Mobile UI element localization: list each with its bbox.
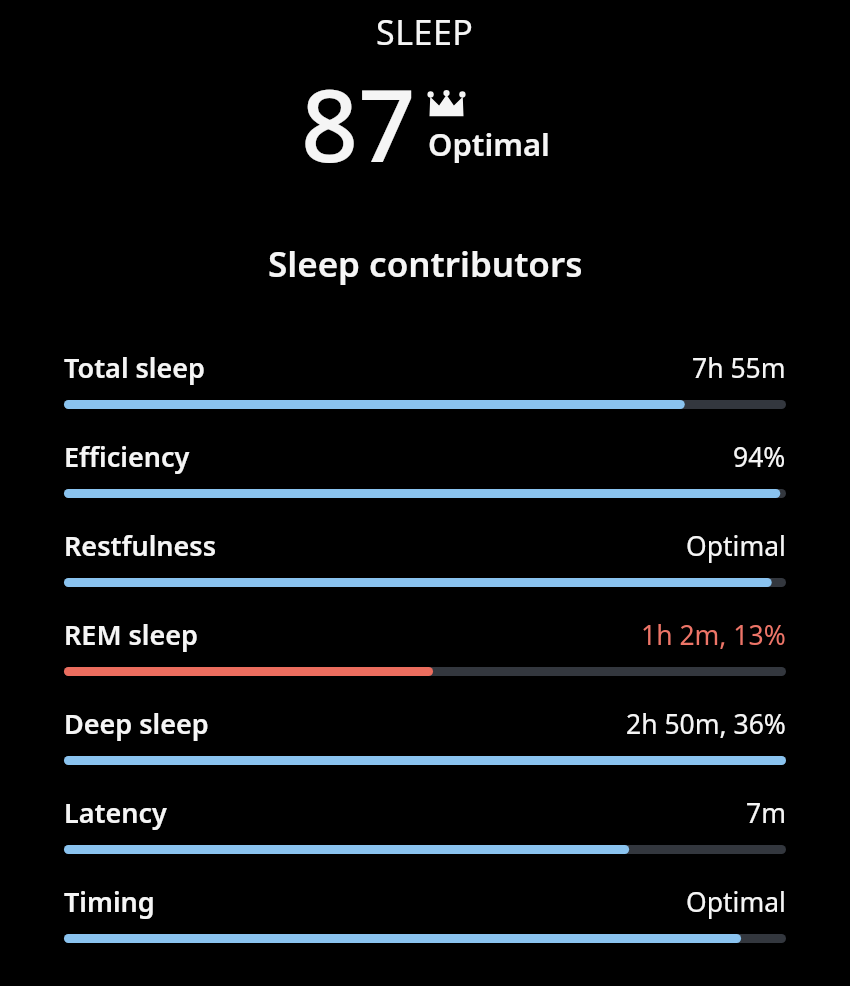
- staticText: REM sleep: [64, 616, 198, 653]
- button[interactable]: Total sleep: [64, 328, 786, 417]
- staticText: Latency: [64, 794, 167, 831]
- staticText: 7m: [746, 795, 786, 831]
- button[interactable]: Restfulness: [64, 506, 786, 595]
- staticText: Timing: [64, 883, 155, 920]
- staticText: Total sleep: [64, 349, 205, 386]
- staticText: Sleep contributors: [268, 240, 583, 288]
- staticText: 7h 55m: [692, 350, 786, 386]
- staticText: Optimal: [428, 123, 550, 165]
- staticText: Restfulness: [64, 527, 216, 564]
- button[interactable]: Latency: [64, 773, 786, 862]
- button[interactable]: Timing: [64, 862, 786, 951]
- staticText: SLEEP: [376, 9, 474, 55]
- staticText: Deep sleep: [64, 705, 209, 742]
- staticText: Optimal: [686, 884, 786, 920]
- button[interactable]: REM sleep: [64, 595, 786, 684]
- staticText: 2h 50m, 36%: [626, 706, 786, 742]
- staticText: Optimal: [686, 528, 786, 564]
- button[interactable]: Deep sleep: [64, 684, 786, 773]
- button[interactable]: 87: [0, 55, 850, 191]
- button[interactable]: Efficiency: [64, 417, 786, 506]
- staticText: 87: [301, 55, 416, 191]
- staticText: Efficiency: [64, 438, 190, 475]
- staticText: 94%: [733, 439, 786, 475]
- staticText: 1h 2m, 13%: [641, 617, 786, 653]
